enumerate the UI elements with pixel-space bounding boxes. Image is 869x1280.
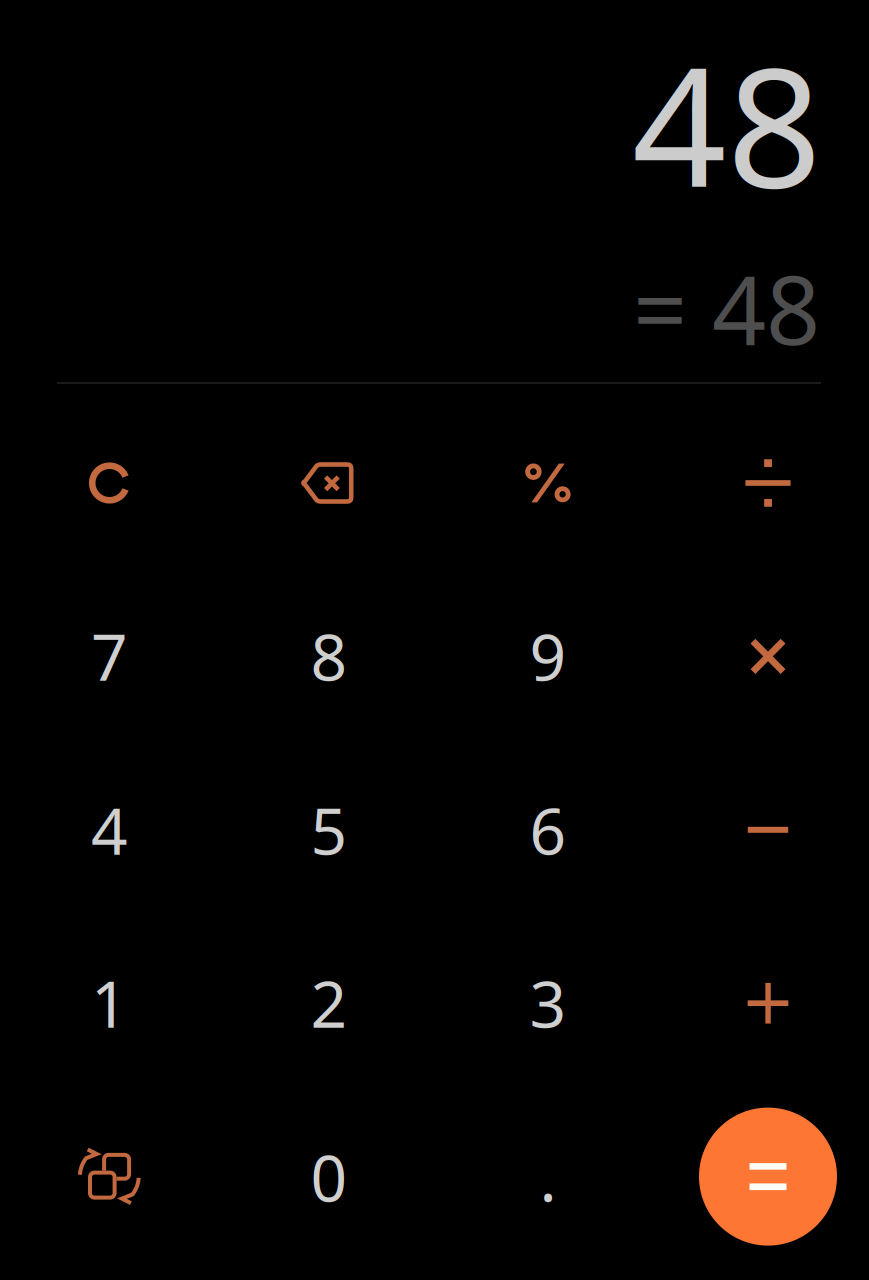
button[interactable]: Delete [229,399,429,567]
staticText: . [539,1134,556,1219]
button[interactable]: Subtract [668,746,868,914]
button[interactable]: 1 [9,919,209,1087]
staticText: 7 [91,613,128,698]
button[interactable]: 4 [9,746,209,914]
staticText: 3 [529,960,566,1045]
button[interactable]: 7 [9,572,209,740]
button[interactable]: Add [668,919,868,1087]
button[interactable]: Divide [668,399,868,567]
staticText: 0 [310,1134,347,1219]
staticText: 1 [91,960,128,1045]
button[interactable]: 3 [448,919,648,1087]
button[interactable]: 5 [229,746,429,914]
staticText: 2 [310,960,347,1045]
staticText: 8 [310,613,347,698]
button[interactable]: 2 [229,919,429,1087]
staticText: 6 [529,787,566,872]
button[interactable]: Convert [9,1093,209,1261]
button[interactable]: . [448,1093,648,1261]
staticText: 9 [529,613,566,698]
button[interactable]: 9 [448,572,648,740]
staticText: 48 [632,13,822,233]
button[interactable]: Multiply [668,572,868,740]
button[interactable]: Percent [448,399,648,567]
staticText: 4 [91,787,128,872]
button[interactable]: 0 [229,1093,429,1261]
button[interactable]: 6 [448,746,648,914]
staticText: 5 [310,787,347,872]
button[interactable]: Clear [9,399,209,567]
staticText: = 48 [633,245,820,371]
button[interactable]: 8 [229,572,429,740]
button[interactable]: Equals [688,1093,848,1261]
